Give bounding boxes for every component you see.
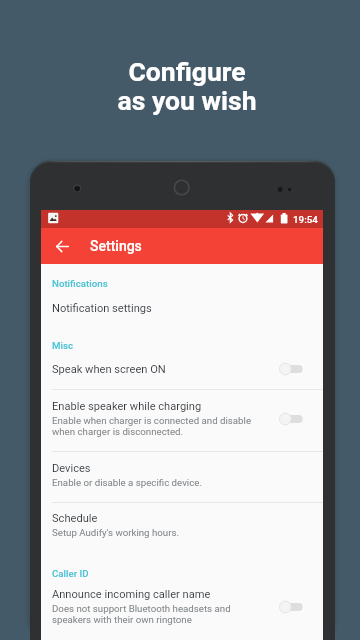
button[interactable]: Toggle Enable speaker while charging	[279, 411, 303, 427]
staticText: Configure	[7, 56, 360, 87]
staticText: Speak when screen ON	[52, 363, 166, 376]
button[interactable]: Devices	[41, 456, 323, 494]
button[interactable]: Back	[49, 233, 75, 259]
button[interactable]: Enable speaker while charging	[41, 394, 323, 444]
button[interactable]: Notification settings	[41, 293, 323, 323]
staticText: Enable speaker while charging	[52, 400, 202, 413]
staticText: Enable when charger is connected and dis…	[52, 415, 252, 438]
staticText: Enable or disable a specific device.	[52, 477, 202, 488]
button[interactable]: Toggle Speak when screen ON	[279, 361, 303, 377]
staticText: Does not support Bluetooth headsets and …	[52, 603, 231, 626]
staticText: Setup Audify's working hours.	[52, 527, 179, 538]
staticText: Schedule	[52, 512, 98, 525]
staticText: Announce incoming caller name	[52, 588, 211, 601]
button[interactable]: Announce incoming caller name	[41, 582, 323, 632]
staticText: as you wish	[7, 85, 360, 116]
staticText: 19:54	[293, 214, 318, 225]
staticText: Caller ID	[52, 568, 89, 579]
staticText: Misc	[52, 340, 74, 351]
staticText: Notifications	[52, 278, 108, 289]
button[interactable]: Speak when screen ON	[41, 354, 323, 384]
button[interactable]: Schedule	[41, 506, 323, 544]
staticText: Notification settings	[52, 302, 152, 315]
button[interactable]: Toggle Announce incoming caller name	[279, 599, 303, 615]
staticText: Settings	[90, 238, 142, 254]
staticText: Devices	[52, 462, 91, 475]
